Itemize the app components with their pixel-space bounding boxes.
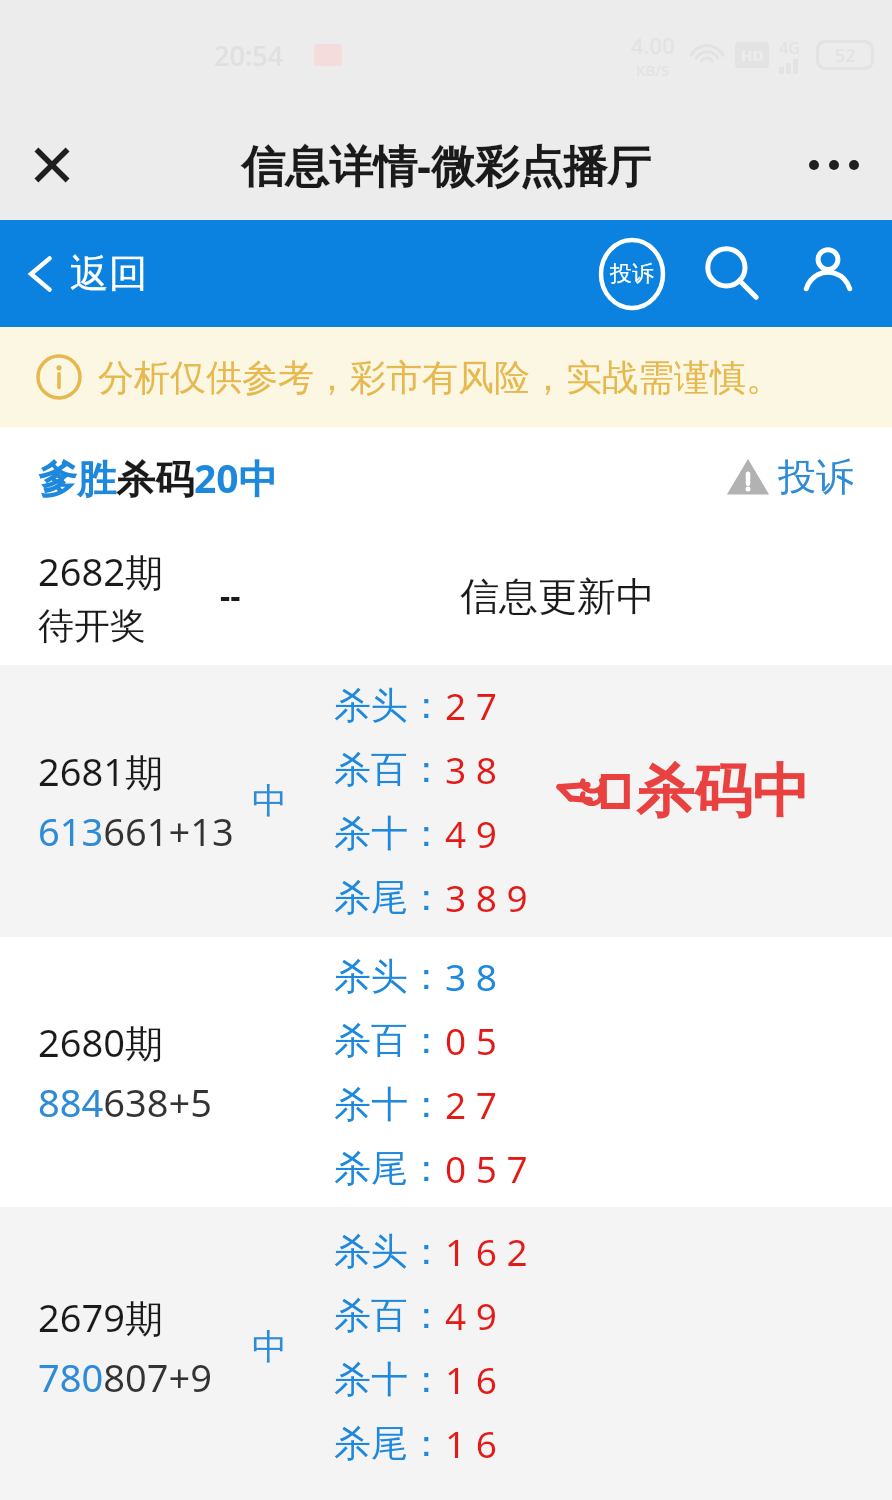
staticText: 1 6 <box>445 1354 497 1404</box>
staticText: 2680期 <box>38 1016 163 1068</box>
staticText: 杀头： <box>334 953 445 1000</box>
staticText: 分析仅供参考，彩市有风险，实战需谨慎。 <box>98 355 782 400</box>
staticText: 中 <box>252 779 287 823</box>
button[interactable]: Close <box>14 127 90 203</box>
staticText: 4 9 <box>445 1290 497 1340</box>
button[interactable]: Search <box>690 234 770 314</box>
button[interactable]: 2681期 <box>0 665 892 937</box>
staticText: KB/S <box>636 60 670 80</box>
staticText: -- <box>220 574 241 618</box>
staticText: 信息更新中 <box>460 572 655 621</box>
staticText: 杀头： <box>334 682 445 729</box>
button[interactable]: More options <box>796 127 872 203</box>
staticText: 2681期 <box>38 745 163 797</box>
staticText: 杀十： <box>334 1081 445 1128</box>
button[interactable]: 投诉 <box>592 234 672 314</box>
staticText: 4 9 <box>445 808 497 858</box>
staticText: 780807+9 <box>38 1351 212 1403</box>
staticText: 3 8 9 <box>445 872 528 922</box>
button[interactable]: 2679期 <box>0 1207 892 1487</box>
staticText: 20:54 <box>214 37 284 74</box>
staticText: 返回 <box>70 249 148 298</box>
button[interactable]: 投诉 <box>726 453 854 501</box>
staticText: 杀尾： <box>334 1145 445 1192</box>
staticText: 信息详情-微彩点播厅 <box>241 135 652 195</box>
staticText: 2 7 <box>445 1079 497 1129</box>
staticText: 待开奖 <box>38 603 146 648</box>
staticText: 中 <box>252 1325 287 1369</box>
staticText: 杀百： <box>334 1017 445 1064</box>
staticText: 884638+5 <box>38 1076 212 1128</box>
button[interactable]: 2680期 <box>0 937 892 1207</box>
staticText: 613661+13 <box>38 805 234 857</box>
staticText: 投诉 <box>610 260 654 288</box>
button[interactable]: Profile <box>788 234 868 314</box>
staticText: 杀百： <box>334 1292 445 1339</box>
staticText: 杀码中 <box>636 755 810 828</box>
staticText: 杀尾： <box>334 874 445 921</box>
staticText: 投诉 <box>778 453 854 501</box>
staticText: 爹胜杀码20中 <box>38 451 278 504</box>
staticText: 杀十： <box>334 1356 445 1403</box>
staticText: 杀十： <box>334 810 445 857</box>
staticText: 3 8 <box>445 744 497 794</box>
staticText: 杀百： <box>334 746 445 793</box>
staticText: 2679期 <box>38 1291 163 1343</box>
button[interactable]: 返回 <box>24 249 148 298</box>
staticText: 1 6 2 <box>445 1226 528 1276</box>
staticText: HD <box>741 45 764 65</box>
staticText: 3 8 <box>445 951 497 1001</box>
staticText: 4G <box>779 37 800 59</box>
staticText: 0 5 7 <box>445 1143 528 1193</box>
staticText: 2682期 <box>38 545 163 597</box>
staticText: 1 6 <box>445 1418 497 1468</box>
staticText: 2 7 <box>445 680 497 730</box>
staticText: 杀头： <box>334 1228 445 1275</box>
staticText: 52 <box>835 43 856 67</box>
staticText: 杀尾： <box>334 1420 445 1467</box>
staticText: 4.00 <box>631 30 675 60</box>
staticText: 0 5 <box>445 1015 497 1065</box>
